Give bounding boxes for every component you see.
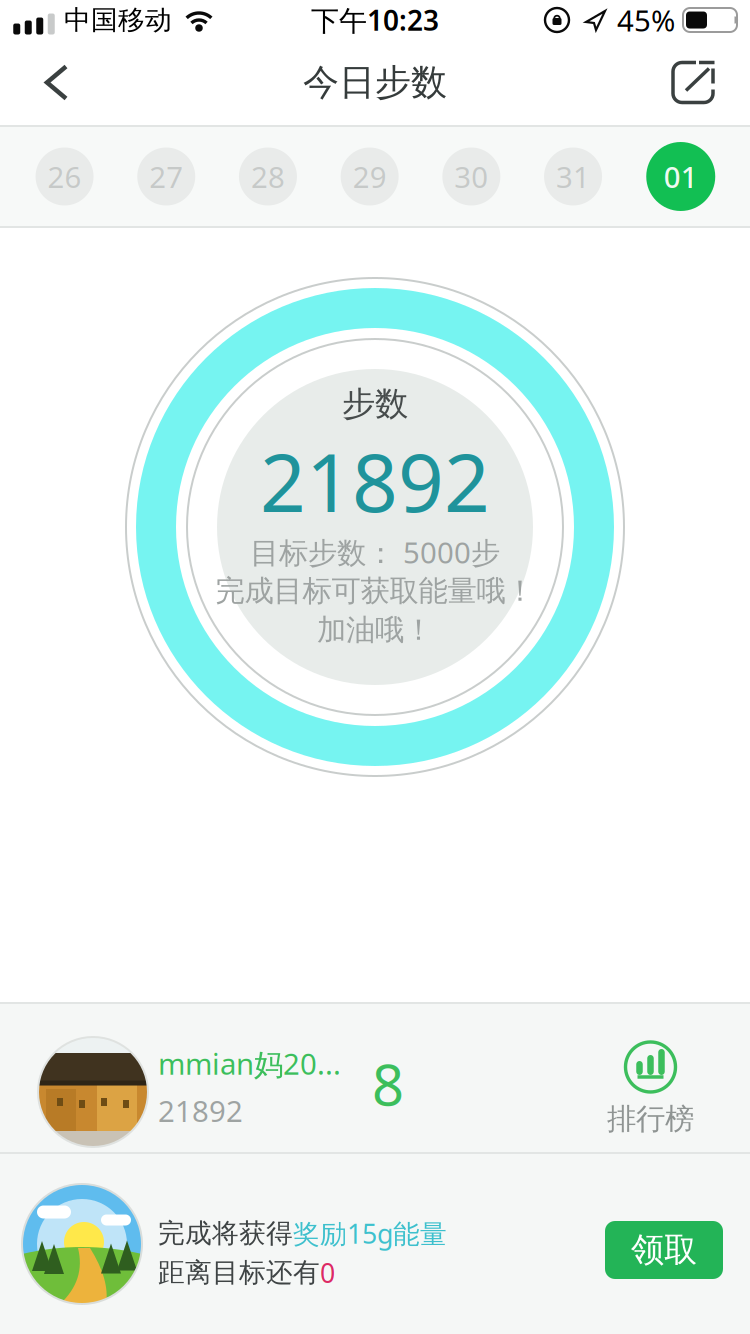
- staticText: 今日步数: [303, 60, 447, 105]
- staticText: 21892: [158, 1091, 243, 1130]
- button[interactable]: 01: [646, 147, 704, 205]
- staticText: 奖励15g能量: [293, 1216, 447, 1251]
- staticText: 30: [454, 157, 488, 196]
- button[interactable]: 领取: [605, 1215, 723, 1273]
- staticText: 排行榜: [607, 1101, 694, 1137]
- staticText: 0: [320, 1255, 335, 1290]
- button[interactable]: 返回: [36, 60, 80, 104]
- staticText: 步数: [342, 383, 408, 424]
- staticText: 加油哦！: [317, 612, 433, 648]
- staticText: mmian妈20...: [158, 1044, 341, 1083]
- staticText: 完成目标可获取能量哦！: [215, 573, 534, 609]
- staticText: 距离目标还有: [158, 1256, 320, 1289]
- staticText: 8: [372, 1047, 404, 1121]
- staticText: 01: [664, 157, 698, 196]
- staticText: 中国移动: [64, 4, 172, 36]
- staticText: 29: [353, 157, 387, 196]
- staticText: 27: [149, 157, 183, 196]
- button[interactable]: 排行榜: [607, 1030, 694, 1126]
- staticText: 领取: [631, 1229, 697, 1270]
- button[interactable]: 26: [36, 147, 94, 205]
- button[interactable]: 27: [137, 147, 195, 205]
- staticText: 下午10:23: [311, 1, 439, 39]
- button[interactable]: 29: [341, 147, 399, 205]
- button[interactable]: 31: [544, 147, 602, 205]
- staticText: 目标步数： 5000步: [250, 532, 500, 571]
- staticText: 21892: [260, 428, 490, 534]
- button[interactable]: 28: [239, 147, 297, 205]
- staticText: 完成将获得: [158, 1217, 293, 1250]
- button[interactable]: 30: [442, 147, 500, 205]
- staticText: 45%: [617, 0, 675, 39]
- staticText: 28: [251, 157, 285, 196]
- staticText: 31: [556, 157, 590, 196]
- staticText: 26: [48, 157, 82, 196]
- button[interactable]: 分享: [670, 59, 716, 105]
